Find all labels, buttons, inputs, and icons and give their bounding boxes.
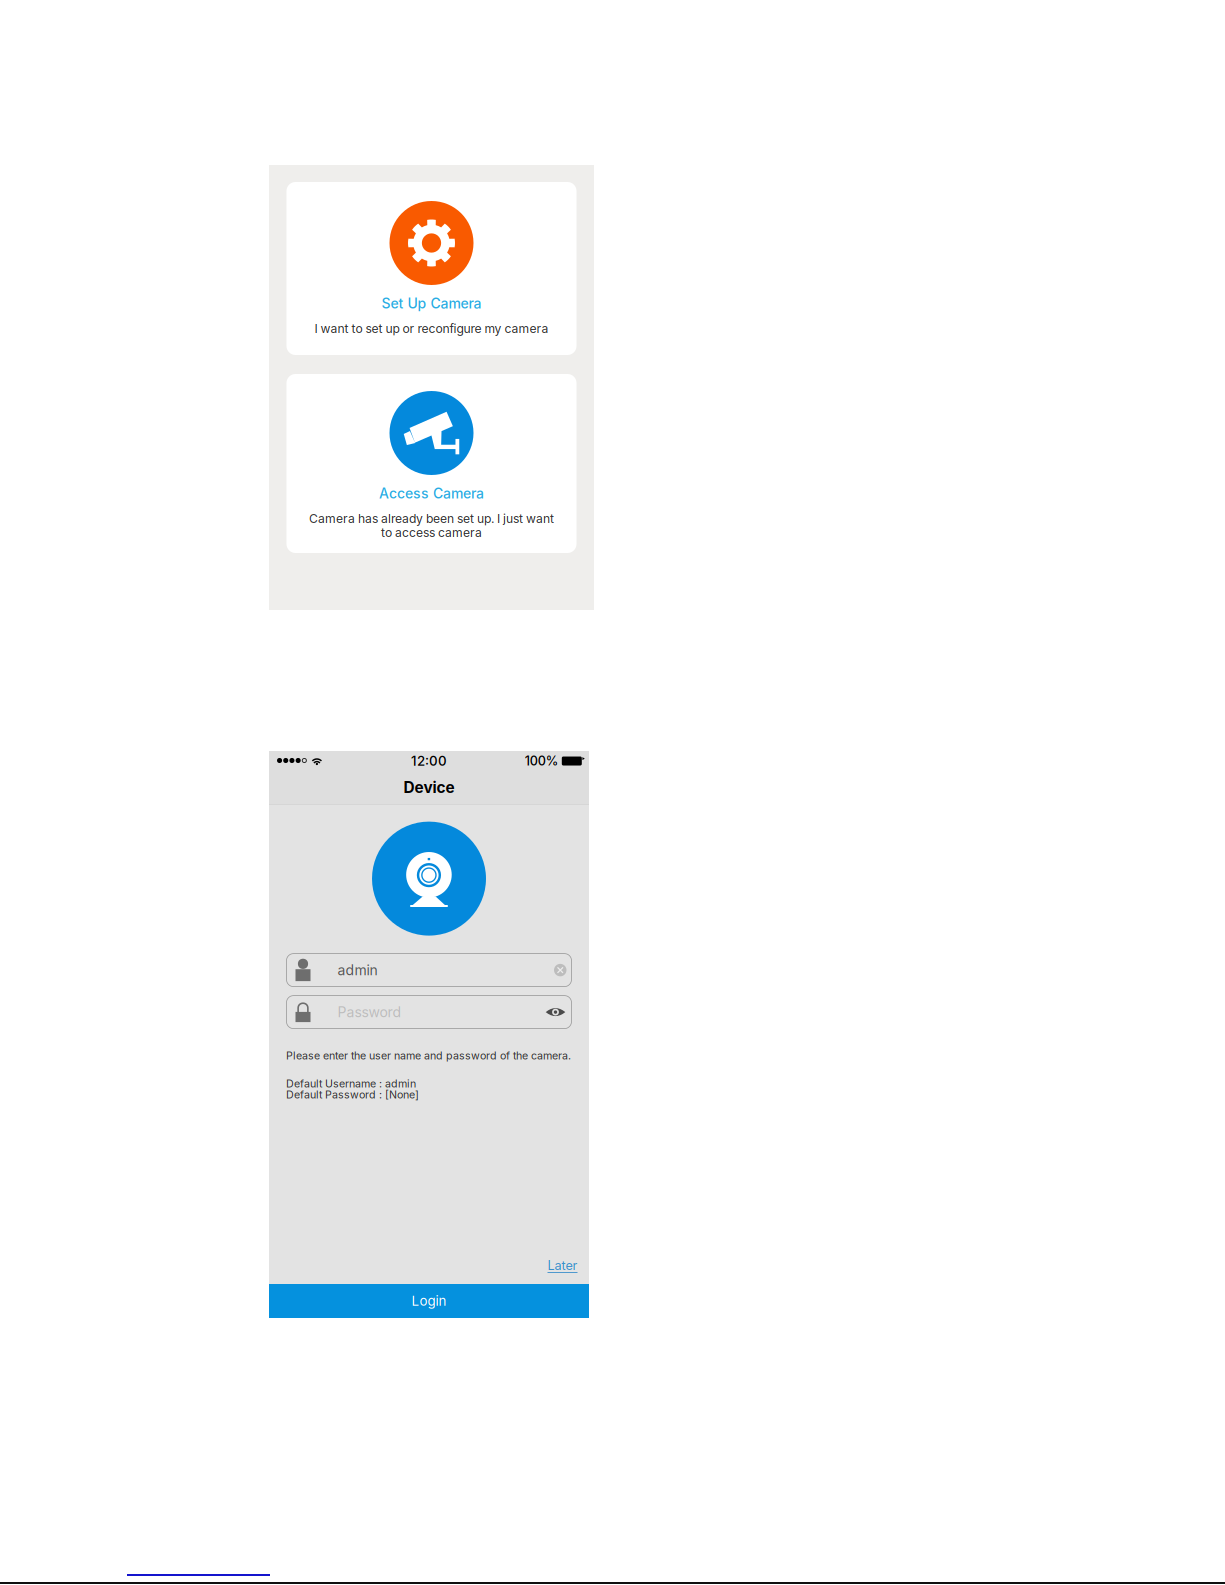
- staticText: 12:00: [411, 753, 447, 769]
- button[interactable]: Set Up Camera: [286, 182, 576, 355]
- staticText: to access camera: [381, 525, 482, 540]
- staticText: Login: [411, 1293, 446, 1309]
- staticText: Please enter the user name and password …: [286, 1049, 571, 1062]
- staticText: 100%: [525, 753, 559, 769]
- staticText: Access Camera: [379, 485, 484, 502]
- staticText: Camera has already been set up. I just w…: [309, 511, 554, 526]
- staticText: Set Up Camera: [381, 295, 481, 312]
- staticText: Default Password : [None]: [286, 1088, 419, 1101]
- staticText: I want to set up or reconfigure my camer…: [314, 321, 548, 336]
- staticText: Device: [403, 778, 454, 797]
- staticText: Later: [547, 1258, 577, 1273]
- button[interactable]: Access Camera: [286, 374, 576, 553]
- staticText: Default Username : admin: [286, 1077, 416, 1090]
- button[interactable]: Later: [547, 1258, 577, 1273]
- button[interactable]: Password: [286, 996, 571, 1029]
- button[interactable]: Login: [269, 1284, 589, 1318]
- staticText: admin: [337, 962, 377, 978]
- button[interactable]: Clear user name: [554, 964, 566, 976]
- button[interactable]: admin: [286, 954, 571, 987]
- button[interactable]: Show password: [545, 1007, 565, 1017]
- staticText: Password: [337, 1004, 401, 1020]
